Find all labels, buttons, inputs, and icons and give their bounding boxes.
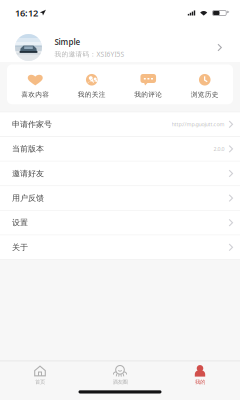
staticText: 申请作家号 <box>12 119 52 129</box>
staticText: 我的评论 <box>134 90 162 99</box>
button[interactable]: 申请作家号 <box>0 112 240 137</box>
button[interactable]: Simple <box>0 26 240 62</box>
staticText: 用户反馈 <box>12 193 44 203</box>
button[interactable]: 用户反馈 <box>0 186 240 211</box>
staticText: http://mp.guojutt.com <box>172 121 225 128</box>
staticText: 浏览历史 <box>191 90 219 99</box>
staticText: 我的 <box>195 379 205 385</box>
staticText: 当前版本 <box>12 144 44 154</box>
button[interactable]: 浏览历史 <box>176 64 233 104</box>
button[interactable]: 我的评论 <box>120 64 176 104</box>
staticText: 我的邀请码：XSI6YI5S <box>54 50 124 58</box>
staticText: 喜欢内容 <box>21 90 49 99</box>
staticText: 酒友圈 <box>112 379 127 385</box>
staticText: 邀请好友 <box>12 169 44 178</box>
button[interactable]: 首页 <box>0 360 80 385</box>
button[interactable]: 酒友圈 <box>80 360 160 385</box>
button[interactable]: 邀请好友 <box>0 162 240 186</box>
staticText: 首页 <box>35 379 45 385</box>
button[interactable]: 我的 <box>160 360 240 385</box>
button[interactable]: 当前版本 <box>0 137 240 162</box>
staticText: 设置 <box>12 218 28 228</box>
staticText: 16:12 <box>15 7 38 19</box>
button[interactable]: 设置 <box>0 211 240 235</box>
staticText: Simple <box>54 36 80 47</box>
button[interactable]: 喜欢内容 <box>7 64 63 104</box>
staticText: 关于 <box>12 242 28 252</box>
button[interactable]: 我的关注 <box>63 64 120 104</box>
staticText: 2.0.0 <box>214 145 225 152</box>
button[interactable]: 关于 <box>0 235 240 260</box>
staticText: 我的关注 <box>78 90 106 99</box>
